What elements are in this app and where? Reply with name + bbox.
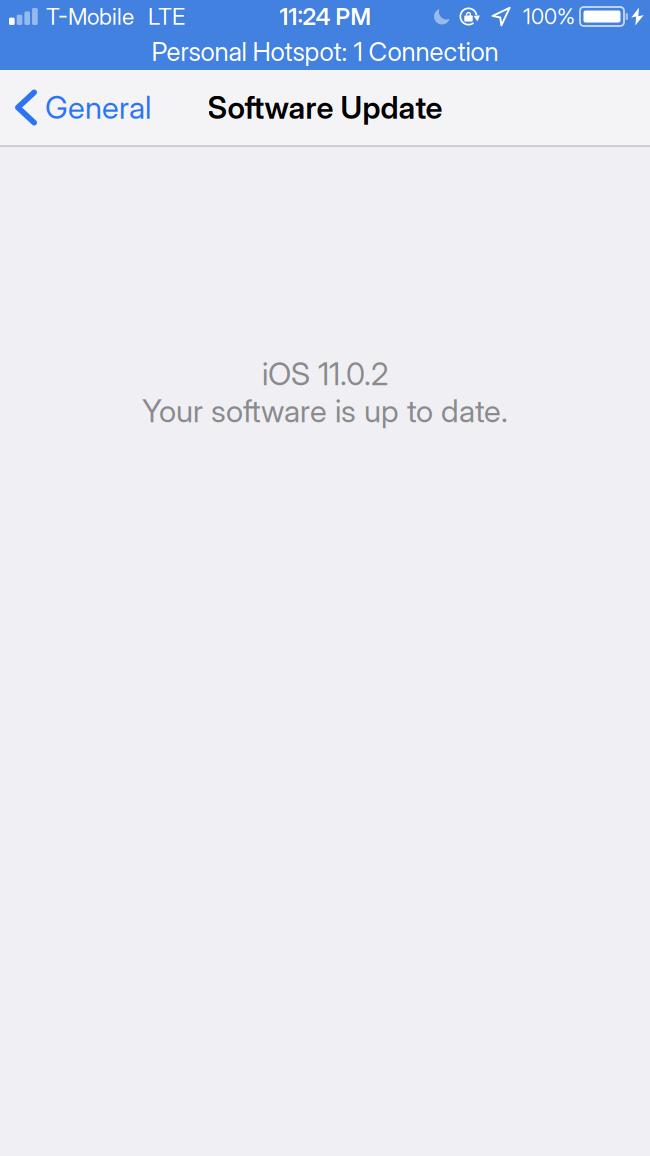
staticText: General xyxy=(45,89,151,126)
staticText: T-Mobile xyxy=(46,3,134,30)
staticText: iOS 11.0.2 xyxy=(262,355,388,393)
staticText: 100% xyxy=(523,4,575,29)
staticText: LTE xyxy=(148,3,185,30)
button[interactable]: General xyxy=(0,70,163,145)
staticText: Personal Hotspot: 1 Connection xyxy=(151,36,498,67)
staticText: 11:24 PM xyxy=(279,2,370,31)
staticText: Your software is up to date. xyxy=(142,392,508,430)
staticText: Software Update xyxy=(207,89,442,126)
